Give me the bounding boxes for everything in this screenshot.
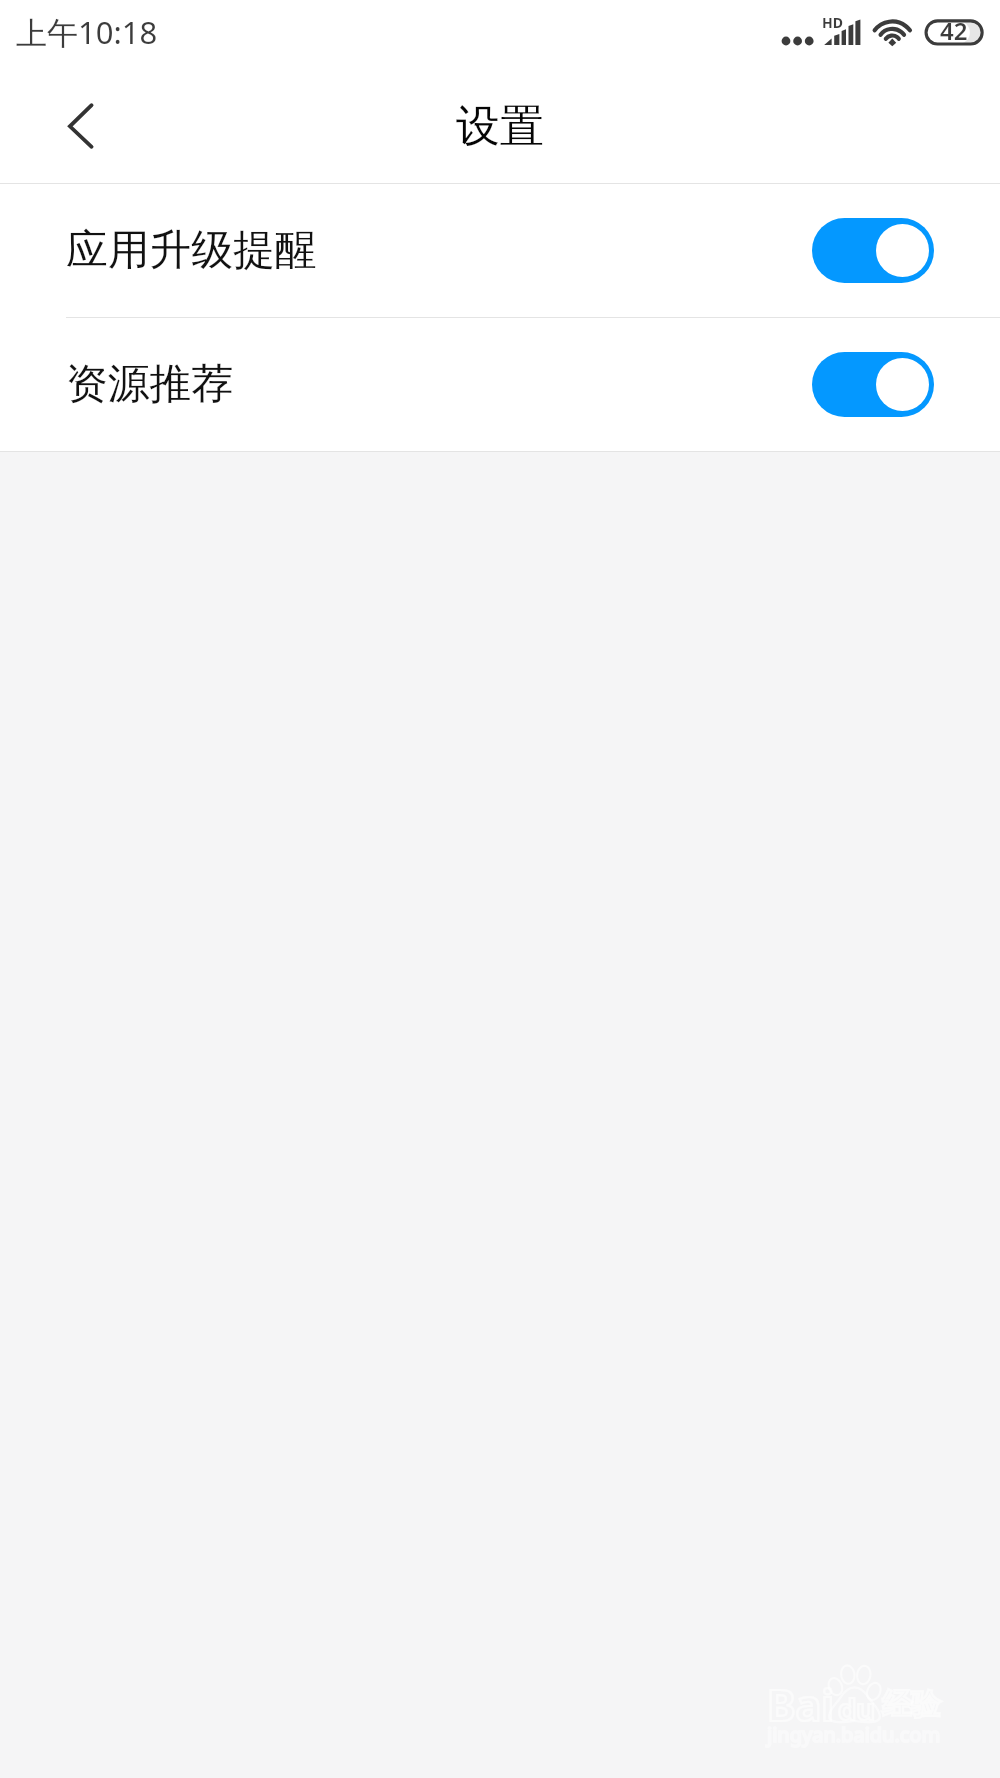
staticText: HD — [822, 13, 843, 32]
staticText: 设置 — [456, 99, 544, 154]
button[interactable]: Toggle switch — [812, 218, 934, 283]
button[interactable]: 资源推荐 — [0, 318, 1000, 451]
staticText: 应用升级提醒 — [66, 224, 317, 277]
button[interactable]: Back — [0, 70, 112, 183]
staticText: 上午10:18 — [16, 11, 158, 53]
staticText: 资源推荐 — [66, 358, 234, 411]
button[interactable]: 应用升级提醒 — [0, 184, 1000, 317]
button[interactable]: Toggle switch — [812, 352, 934, 417]
staticText: 42 — [940, 14, 968, 47]
